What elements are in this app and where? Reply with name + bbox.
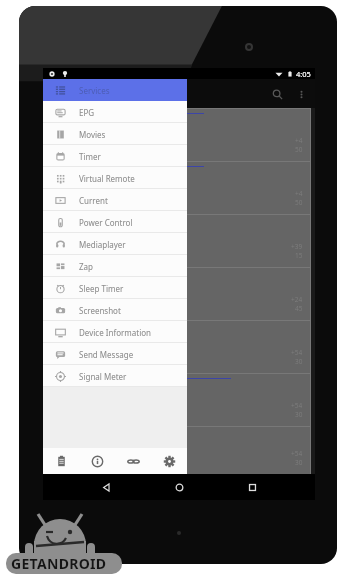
button[interactable]: Recent apps bbox=[240, 475, 264, 499]
staticText: 30 bbox=[295, 357, 303, 366]
staticText: 15 bbox=[295, 251, 303, 260]
staticText: Movies bbox=[79, 129, 106, 140]
button[interactable]: Zap bbox=[43, 255, 187, 277]
button[interactable]: Power Control bbox=[43, 211, 187, 233]
staticText: +4 bbox=[295, 189, 303, 198]
staticText: Zap bbox=[79, 261, 93, 272]
button[interactable]: Services bbox=[43, 79, 187, 101]
button[interactable]: Virtual Remote bbox=[43, 167, 187, 189]
button[interactable]: Link bbox=[115, 448, 151, 474]
button[interactable]: Settings bbox=[151, 448, 187, 474]
button[interactable]: More options bbox=[289, 82, 313, 106]
button[interactable]: Info bbox=[79, 448, 115, 474]
button[interactable]: +39 bbox=[43, 214, 311, 267]
button[interactable]: +54 bbox=[43, 320, 311, 373]
button[interactable]: Current bbox=[43, 189, 187, 211]
staticText: Sleep Timer bbox=[79, 283, 124, 294]
staticText: Mediaplayer bbox=[79, 239, 126, 250]
staticText: Device Information bbox=[79, 327, 152, 338]
staticText: 4:05 bbox=[296, 69, 311, 79]
staticText: EPG bbox=[79, 107, 95, 118]
staticText: GETANDROID bbox=[11, 554, 107, 573]
staticText: 45 bbox=[295, 304, 303, 313]
button[interactable]: Sleep Timer bbox=[43, 277, 187, 299]
button[interactable]: Screenshot bbox=[43, 299, 187, 321]
button[interactable]: +54 bbox=[43, 426, 311, 474]
button[interactable]: +4 bbox=[43, 108, 311, 161]
button[interactable]: Home bbox=[167, 475, 191, 499]
staticText: Send Message bbox=[79, 349, 134, 360]
button[interactable]: Movies bbox=[43, 123, 187, 145]
button[interactable]: +54 bbox=[43, 373, 311, 426]
staticText: Current bbox=[79, 195, 108, 206]
staticText: 30 bbox=[295, 410, 303, 419]
button[interactable]: Mediaplayer bbox=[43, 233, 187, 255]
button[interactable]: Timer bbox=[43, 145, 187, 167]
staticText: +4 bbox=[295, 136, 303, 145]
staticText: 50 bbox=[295, 198, 303, 207]
button[interactable]: Notes bbox=[43, 448, 79, 474]
staticText: +39 bbox=[291, 242, 303, 251]
staticText: +54 bbox=[291, 401, 303, 410]
staticText: Timer bbox=[79, 151, 101, 162]
staticText: +54 bbox=[291, 449, 303, 458]
staticText: Power Control bbox=[79, 217, 133, 228]
button[interactable]: +24 bbox=[43, 267, 311, 320]
staticText: Signal Meter bbox=[79, 371, 127, 382]
button[interactable]: EPG bbox=[43, 101, 187, 123]
button[interactable]: Device Information bbox=[43, 321, 187, 343]
button[interactable]: Signal Meter bbox=[43, 365, 187, 387]
staticText: Services bbox=[79, 85, 110, 96]
button[interactable]: Back bbox=[94, 475, 118, 499]
staticText: +24 bbox=[291, 295, 303, 304]
staticText: 50 bbox=[295, 145, 303, 154]
staticText: +54 bbox=[291, 348, 303, 357]
button[interactable]: Search bbox=[265, 82, 289, 106]
staticText: Virtual Remote bbox=[79, 173, 135, 184]
button[interactable]: Send Message bbox=[43, 343, 187, 365]
button[interactable]: +4 bbox=[43, 161, 311, 214]
staticText: 30 bbox=[295, 458, 303, 467]
staticText: Screenshot bbox=[79, 305, 121, 316]
